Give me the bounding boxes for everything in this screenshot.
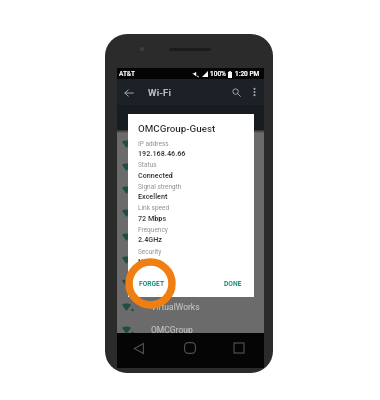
button[interactable]: Back <box>128 337 150 359</box>
staticText: Security <box>138 248 162 256</box>
staticText: 2.4GHz <box>138 235 162 243</box>
staticText: DONE <box>224 280 242 288</box>
button[interactable]: Home <box>179 337 201 359</box>
button[interactable]: DONE <box>219 276 247 292</box>
staticText: IP address <box>138 140 169 148</box>
staticText: Wi-Fi <box>148 87 172 98</box>
staticText: VirtualWorks <box>151 302 200 312</box>
button[interactable]: FORGET <box>134 276 170 292</box>
staticText: Frequency <box>138 226 168 234</box>
staticText: None <box>138 257 156 265</box>
staticText: 1:20 PM <box>235 70 260 78</box>
button[interactable]: Recent apps <box>228 337 250 359</box>
staticText: FORGET <box>139 280 165 288</box>
staticText: OMCGroup <box>151 325 193 335</box>
staticText: Link speed <box>138 204 170 212</box>
staticText: Signal strength <box>138 183 182 191</box>
button[interactable]: Back <box>120 84 137 101</box>
staticText: Connected <box>138 171 173 179</box>
staticText: 72 Mbps <box>138 214 167 222</box>
staticText: Status <box>138 161 157 169</box>
staticText: AT&T <box>119 70 136 78</box>
button[interactable]: More options <box>247 85 261 99</box>
staticText: OMCGroup-Guest <box>138 123 216 134</box>
button[interactable]: Search <box>228 84 244 100</box>
staticText: 192.168.46.66 <box>138 149 186 157</box>
staticText: 100% <box>210 70 226 78</box>
staticText: Excellent <box>138 192 168 200</box>
